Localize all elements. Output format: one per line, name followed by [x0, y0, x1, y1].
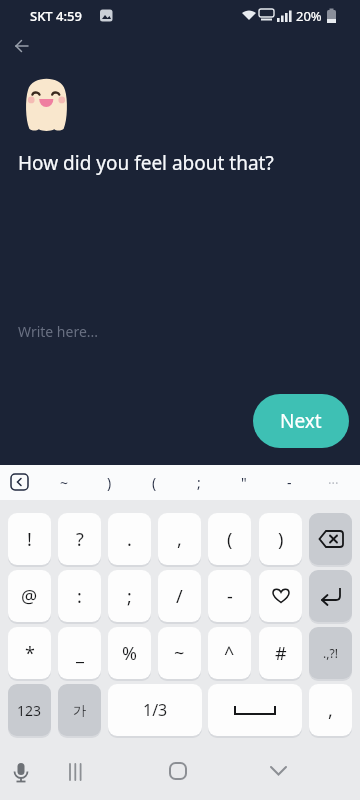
staticText: ( [152, 473, 157, 492]
staticText: : [77, 584, 82, 609]
staticText: , [328, 698, 333, 723]
button[interactable]: # [259, 627, 302, 679]
staticText: Next [280, 408, 322, 434]
button[interactable]: ; [108, 570, 151, 622]
button[interactable] [62, 760, 94, 792]
button[interactable]: ^ [208, 627, 251, 679]
button[interactable] [10, 473, 30, 492]
button[interactable]: ) [95, 465, 123, 500]
button[interactable]: / [158, 570, 201, 622]
staticText: ~ [60, 473, 69, 492]
staticText: % [122, 641, 137, 666]
staticText: ; [197, 473, 201, 492]
button[interactable] [6, 760, 36, 790]
staticText: 1/3 [143, 699, 168, 721]
staticText: 123 [17, 701, 42, 720]
staticText: @ [21, 584, 38, 609]
button[interactable]: " [230, 465, 258, 500]
staticText: ) [107, 473, 112, 492]
button[interactable]: ( [208, 513, 251, 565]
staticText: - [227, 584, 233, 609]
button[interactable]: 1/3 [108, 684, 202, 736]
staticText: Write here... [18, 322, 99, 341]
button[interactable]: , [309, 684, 352, 736]
staticText: ~ [174, 641, 185, 666]
button[interactable]: @ [8, 570, 51, 622]
button[interactable]: : [58, 570, 101, 622]
staticText: . [127, 527, 132, 552]
staticText: SKT 4:59 [30, 7, 82, 25]
staticText: # [275, 641, 287, 666]
staticText: ) [278, 527, 284, 552]
button[interactable]: 123 [8, 684, 51, 736]
button[interactable] [309, 513, 352, 565]
staticText: ^ [224, 641, 235, 666]
staticText: ! [27, 527, 32, 552]
button[interactable]: ( [140, 465, 168, 500]
button[interactable]: * [8, 627, 51, 679]
button[interactable]: 가 [58, 684, 101, 736]
staticText: ? [76, 527, 84, 552]
button[interactable]: ) [259, 513, 302, 565]
button[interactable]: - [275, 465, 303, 500]
button[interactable]: _ [58, 627, 101, 679]
button[interactable]: , [158, 513, 201, 565]
button[interactable]: - [208, 570, 251, 622]
button[interactable]: % [108, 627, 151, 679]
staticText: 가 [73, 702, 86, 718]
button[interactable] [262, 760, 294, 792]
button[interactable]: ~ [50, 465, 78, 500]
button[interactable] [309, 570, 352, 622]
staticText: - [287, 473, 292, 492]
button[interactable] [162, 760, 194, 792]
button[interactable] [208, 684, 302, 736]
button[interactable]: ! [8, 513, 51, 565]
button[interactable]: .,?! [309, 627, 352, 679]
button[interactable]: . [108, 513, 151, 565]
staticText: _ [76, 641, 84, 666]
staticText: / [176, 584, 183, 609]
button[interactable]: ~ [158, 627, 201, 679]
staticText: " [241, 473, 247, 492]
staticText: * [25, 641, 35, 666]
button[interactable]: ? [58, 513, 101, 565]
button[interactable] [12, 38, 34, 60]
button[interactable] [259, 570, 302, 622]
staticText: , [177, 527, 182, 552]
staticText: ; [127, 584, 132, 609]
button[interactable]: ; [185, 465, 213, 500]
staticText: .,?! [323, 645, 338, 661]
staticText: ( [227, 527, 233, 552]
staticText: 20% [296, 7, 322, 25]
staticText: ... [328, 470, 339, 488]
button[interactable]: Next [253, 394, 349, 448]
staticText: How did you feel about that? [18, 150, 274, 176]
